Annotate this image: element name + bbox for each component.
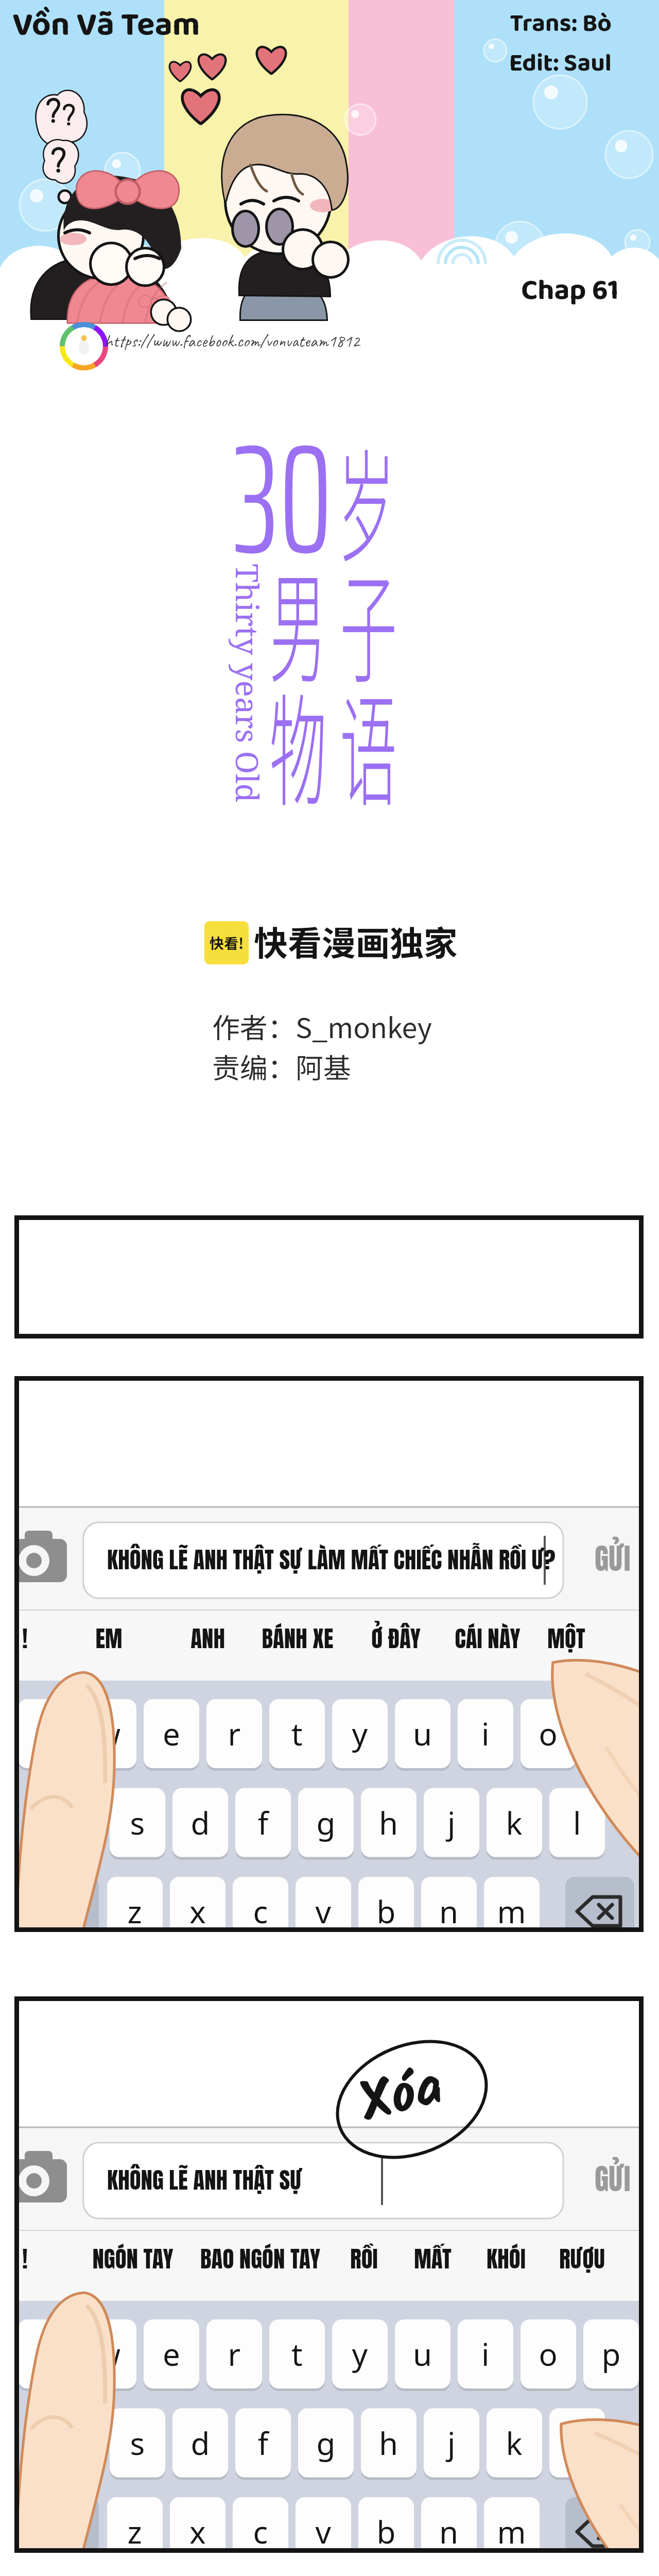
staticText: 快看漫画独家: [254, 916, 458, 965]
button[interactable]: !: [0, 2241, 97, 2273]
button[interactable]: [421, 2497, 477, 2566]
button[interactable]: [395, 1699, 450, 1768]
button[interactable]: RƯỢU: [510, 2241, 654, 2273]
staticText: MẤT: [414, 2241, 452, 2273]
button[interactable]: Shift: [30, 1877, 99, 1946]
button[interactable]: [298, 2409, 354, 2478]
button[interactable]: [521, 2319, 576, 2388]
staticText: Xóa: [351, 2046, 452, 2149]
button[interactable]: GỬI: [581, 1530, 645, 1587]
button[interactable]: BÁNH XE: [226, 1621, 370, 1653]
staticText: NGÓN TAY: [92, 2241, 174, 2273]
button[interactable]: Shift: [30, 2497, 99, 2566]
button[interactable]: [458, 1699, 513, 1768]
button[interactable]: NGÓN TAY: [61, 2241, 205, 2273]
button[interactable]: [47, 2409, 102, 2478]
button[interactable]: [358, 1877, 414, 1946]
button[interactable]: [18, 1699, 74, 1768]
button[interactable]: MẤT: [360, 2241, 505, 2273]
button[interactable]: EM: [37, 1621, 181, 1653]
staticText: https://www.facebook.com/vonvateam1812: [105, 330, 360, 352]
button[interactable]: [18, 2319, 74, 2388]
button[interactable]: [172, 1788, 228, 1857]
staticText: CÁI NÀY: [455, 1621, 521, 1653]
button[interactable]: [144, 1699, 199, 1768]
button[interactable]: [583, 2319, 639, 2388]
staticText: 岁: [338, 411, 395, 587]
button[interactable]: [206, 1699, 262, 1768]
button[interactable]: Backspace: [565, 1877, 634, 1946]
button[interactable]: [269, 1699, 325, 1768]
button[interactable]: [395, 2319, 450, 2388]
button[interactable]: [361, 1788, 417, 1857]
staticText: Edit: Saul: [509, 44, 612, 83]
button[interactable]: MỘT: [494, 1621, 638, 1653]
button[interactable]: [484, 1877, 540, 1946]
button[interactable]: [549, 2409, 605, 2478]
button[interactable]: 快看!: [204, 921, 249, 964]
staticText: 30: [233, 378, 332, 620]
button[interactable]: [144, 2319, 199, 2388]
button[interactable]: Backspace: [565, 2497, 634, 2566]
button[interactable]: [421, 1877, 477, 1946]
staticText: GỬI: [595, 1537, 631, 1580]
button[interactable]: Ở ĐÂY: [324, 1621, 468, 1653]
button[interactable]: [233, 2497, 288, 2566]
button[interactable]: CÁI NÀY: [415, 1621, 560, 1653]
button[interactable]: GỬI: [581, 2150, 645, 2208]
button[interactable]: [424, 2409, 479, 2478]
button[interactable]: [269, 2319, 325, 2388]
button[interactable]: Camera: [9, 2146, 70, 2213]
button[interactable]: [296, 1877, 351, 1946]
button[interactable]: [47, 1788, 102, 1857]
button[interactable]: [521, 1699, 576, 1768]
staticText: !: [22, 1621, 28, 1653]
staticText: 快看!: [210, 933, 244, 954]
button[interactable]: [107, 1877, 163, 1946]
button[interactable]: [107, 2497, 163, 2566]
button[interactable]: !: [0, 1621, 97, 1653]
staticText: RỒI: [350, 2241, 378, 2273]
staticText: !: [22, 2241, 28, 2273]
button[interactable]: [81, 2319, 136, 2388]
button[interactable]: [484, 2497, 540, 2566]
button[interactable]: [235, 1788, 291, 1857]
button[interactable]: [110, 2409, 165, 2478]
button[interactable]: [583, 1699, 639, 1768]
button[interactable]: [487, 1788, 542, 1857]
button[interactable]: [81, 1699, 136, 1768]
button[interactable]: [358, 2497, 414, 2566]
staticText: MỘT: [547, 1621, 585, 1653]
button[interactable]: [172, 2409, 228, 2478]
staticText: KHÓI: [487, 2241, 526, 2273]
button[interactable]: [332, 2319, 388, 2388]
button[interactable]: [110, 1788, 165, 1857]
button[interactable]: ANH: [135, 1621, 280, 1653]
staticText: Chap 61: [521, 268, 619, 314]
button[interactable]: KHÔNG LẼ ANH THẬT SỰ LÀM MẤT CHIẾC NHẪN …: [83, 1522, 563, 1598]
button[interactable]: KHÓI: [434, 2241, 578, 2273]
button[interactable]: [233, 1877, 288, 1946]
button[interactable]: RỒI: [292, 2241, 436, 2273]
staticText: 子: [340, 532, 397, 708]
button[interactable]: [424, 1788, 479, 1857]
button[interactable]: [206, 2319, 262, 2388]
button[interactable]: [298, 1788, 354, 1857]
button[interactable]: KHÔNG LẼ ANH THẬT SỰ: [83, 2143, 563, 2218]
staticText: 语: [340, 655, 397, 831]
button[interactable]: [332, 1699, 388, 1768]
button[interactable]: [458, 2319, 513, 2388]
staticText: Trans: Bò: [510, 4, 612, 44]
button[interactable]: [170, 1877, 226, 1946]
button[interactable]: [361, 2409, 417, 2478]
button[interactable]: Camera: [9, 1526, 70, 1592]
staticText: 责编：阿基: [212, 1046, 351, 1086]
button[interactable]: [296, 2497, 351, 2566]
button[interactable]: [549, 1788, 605, 1857]
button[interactable]: [170, 2497, 226, 2566]
button[interactable]: [235, 2409, 291, 2478]
button[interactable]: [487, 2409, 542, 2478]
staticText: 男: [269, 532, 327, 708]
staticText: BAO NGÓN TAY: [200, 2241, 320, 2273]
button[interactable]: BAO NGÓN TAY: [188, 2241, 332, 2273]
